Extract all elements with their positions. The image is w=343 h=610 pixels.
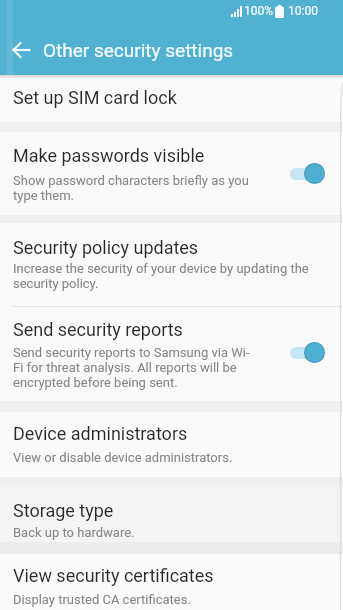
staticText: Show password characters briefly as you … xyxy=(13,173,249,203)
button[interactable]: Set up SIM card lock xyxy=(0,75,343,122)
button[interactable]: Security policy updates xyxy=(0,223,343,306)
button[interactable]: Send security reports xyxy=(0,307,343,401)
staticText: Device administrators xyxy=(13,423,188,444)
staticText: Set up SIM card lock xyxy=(13,87,177,108)
staticText: Security policy updates xyxy=(13,237,199,258)
staticText: Send security reports xyxy=(13,319,183,340)
staticText: View security certificates xyxy=(13,565,214,586)
staticText: Back up to hardware. xyxy=(13,525,135,540)
staticText: Make passwords visible xyxy=(13,145,205,166)
button[interactable]: Make passwords visible xyxy=(0,132,343,215)
staticText: Display trusted CA certificates. xyxy=(13,592,191,607)
staticText: 10:00 xyxy=(288,4,318,18)
staticText: Send security reports to Samsung via Wi-… xyxy=(13,345,250,390)
button[interactable]: Storage type xyxy=(0,487,343,542)
staticText: 100% xyxy=(244,4,274,18)
staticText: Storage type xyxy=(13,500,114,521)
button[interactable]: Device administrators xyxy=(0,412,343,477)
staticText: Increase the security of your device by … xyxy=(13,261,309,291)
button[interactable]: View security certificates xyxy=(0,554,343,610)
staticText: View or disable device administrators. xyxy=(13,450,233,465)
button[interactable] xyxy=(13,42,30,58)
staticText: Other security settings xyxy=(43,39,234,61)
